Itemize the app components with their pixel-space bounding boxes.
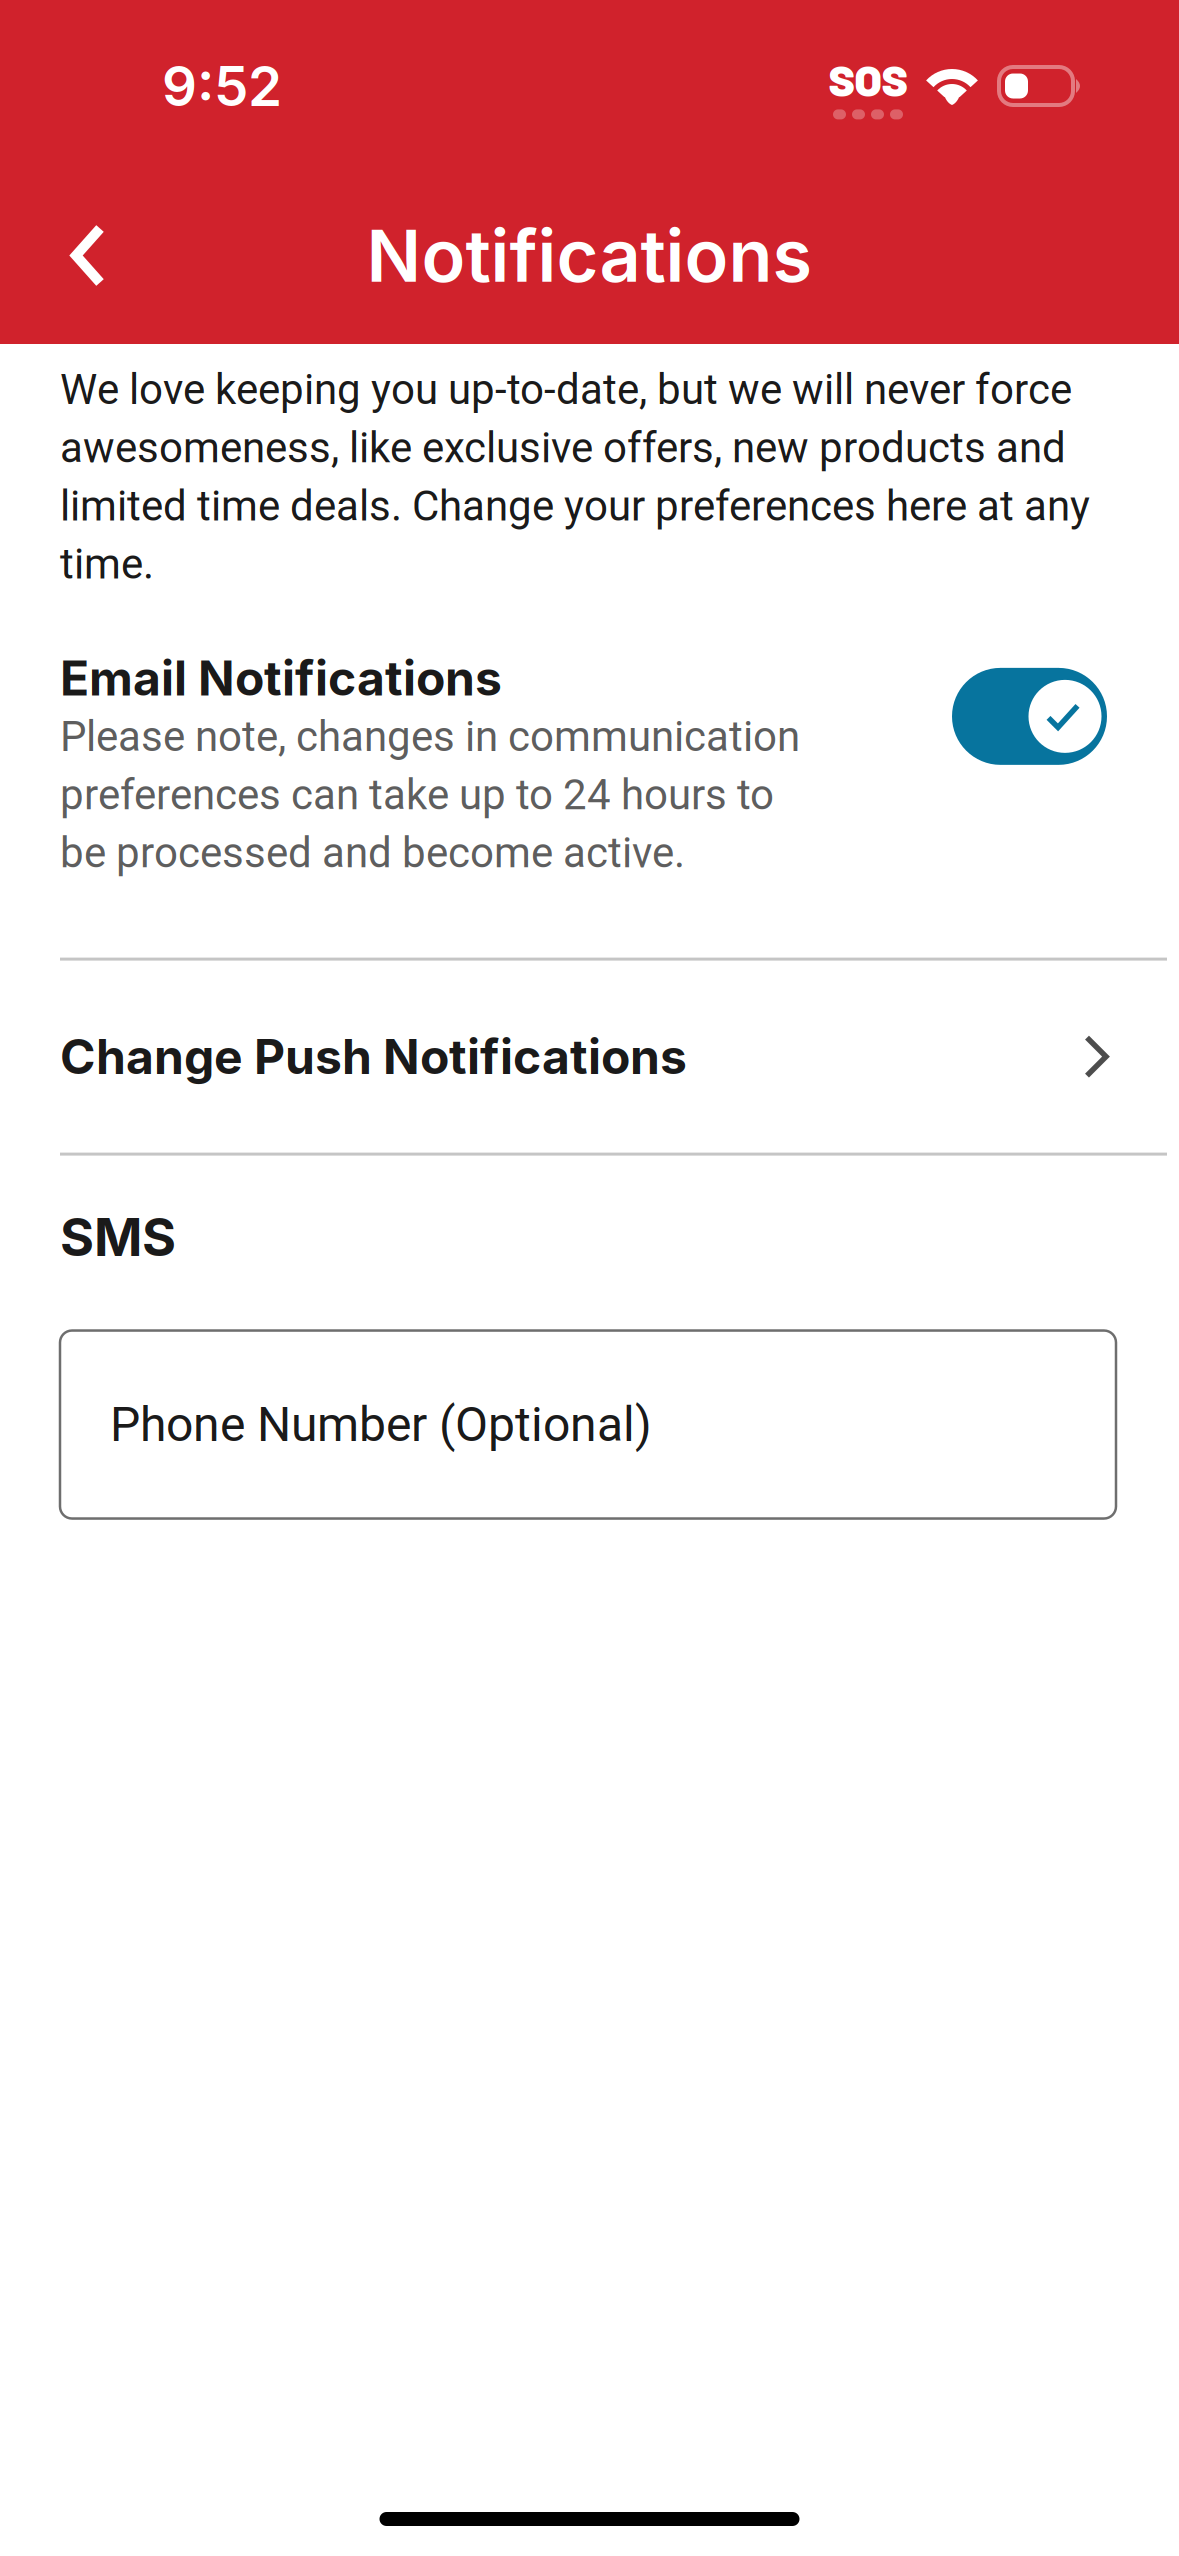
button[interactable]: Change Push Notifications [60,961,1109,1153]
button[interactable]: Back [38,205,138,305]
staticText: SOS [828,53,907,105]
button[interactable]: Phone Number (Optional) [60,1330,1116,1518]
staticText: We love keeping you up-to-date, but we w… [60,365,1090,589]
staticText: Notifications [366,212,812,299]
staticText: 9:52 [162,53,282,119]
staticText: SMS [60,1206,176,1268]
staticText: Please note, changes in communication pr… [60,712,800,878]
staticText: Email Notifications [60,649,502,707]
staticText: Change Push Notifications [60,1028,687,1086]
staticText: Phone Number (Optional) [110,1396,652,1453]
button[interactable]: Email Notifications [952,668,1179,765]
